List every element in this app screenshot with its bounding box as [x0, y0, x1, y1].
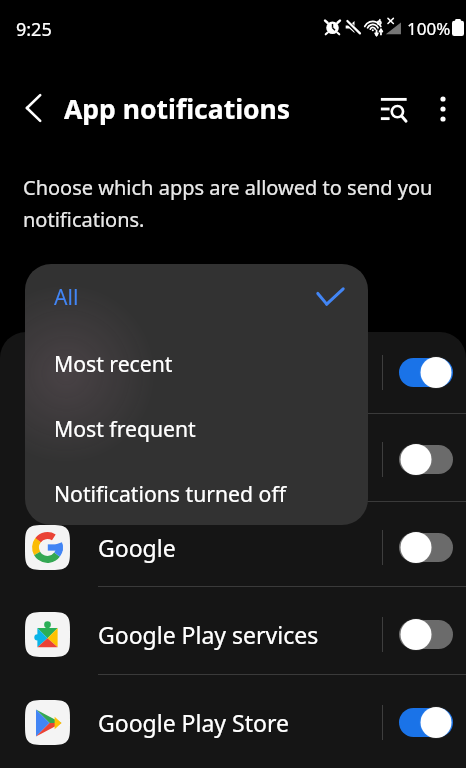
- button[interactable]: Most recent: [25, 331, 368, 395]
- staticText: Notifications turned off: [54, 479, 287, 508]
- button[interactable]: Notifications turned off: [25, 461, 368, 525]
- staticText: All: [54, 282, 79, 311]
- button[interactable]: All: [25, 264, 368, 328]
- button[interactable]: On: [399, 707, 453, 738]
- staticText: Google Play Store: [98, 707, 289, 738]
- staticText: App notifications: [64, 91, 291, 127]
- staticText: Most frequent: [54, 414, 196, 443]
- button[interactable]: Search: [370, 85, 418, 133]
- staticText: Choose which apps are allowed to send yo…: [23, 174, 443, 233]
- staticText: Google: [98, 532, 176, 563]
- button[interactable]: Facebook: [0, 329, 466, 416]
- button[interactable]: Gmail: [0, 416, 466, 503]
- button[interactable]: More options: [419, 85, 466, 133]
- staticText: Google Play services: [98, 619, 319, 650]
- staticText: Most recent: [54, 349, 173, 378]
- button[interactable]: Off: [399, 444, 453, 475]
- button[interactable]: Navigate up: [9, 84, 57, 132]
- staticText: 100%: [407, 17, 451, 40]
- button[interactable]: Most frequent: [25, 396, 368, 460]
- button[interactable]: Off: [399, 532, 453, 563]
- button[interactable]: Google: [0, 504, 466, 591]
- button[interactable]: Google Play services: [0, 591, 466, 678]
- staticText: Facebook: [98, 357, 202, 388]
- staticText: 9:25: [16, 17, 52, 42]
- button[interactable]: On: [399, 357, 453, 388]
- button[interactable]: Off: [399, 619, 453, 650]
- button[interactable]: Google Play Store: [0, 679, 466, 766]
